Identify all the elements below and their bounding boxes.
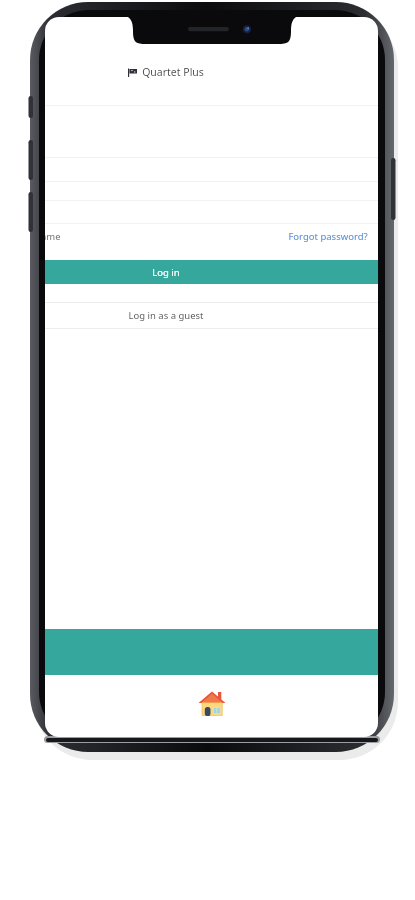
staticText: Remember username bbox=[45, 230, 61, 243]
staticText: Log in as a guest bbox=[128, 309, 204, 322]
button[interactable]: Quartet Plus bbox=[45, 59, 378, 85]
button[interactable]: Log in as a guest bbox=[45, 303, 378, 328]
button[interactable]: Log in bbox=[45, 260, 378, 284]
button[interactable]: Home bbox=[195, 687, 229, 721]
staticText: Forgot password? bbox=[288, 230, 368, 243]
button[interactable]: Forgot password? bbox=[288, 230, 368, 243]
staticText: Quartet Plus bbox=[142, 65, 204, 79]
staticText: Log in bbox=[152, 266, 180, 279]
button[interactable]: Remember username bbox=[45, 230, 61, 243]
